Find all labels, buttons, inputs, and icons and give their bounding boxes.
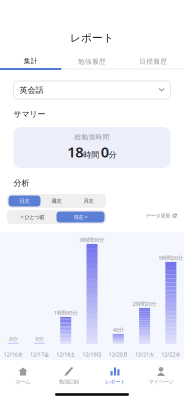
button[interactable]: 集計 <box>0 57 61 70</box>
staticText: 12/19日 <box>82 351 101 358</box>
staticText: 6時間30分 <box>80 236 104 243</box>
staticText: < ひとつ前 <box>20 213 44 221</box>
button[interactable]: < ひとつ前 <box>8 211 56 222</box>
staticText: サマリー <box>13 109 45 119</box>
staticText: 12/16水 <box>4 351 23 358</box>
staticText: 英会話 <box>19 85 43 95</box>
button[interactable]: 日次 <box>8 195 40 206</box>
button[interactable]: 英会話 <box>13 81 170 99</box>
staticText: ホーム <box>15 378 30 385</box>
staticText: 1時間45分 <box>54 309 78 316</box>
staticText: 12/18土 <box>56 351 75 358</box>
staticText: 勉強履歴 <box>78 57 106 66</box>
staticText: 週次 <box>51 198 61 204</box>
staticText: 月次 <box>83 198 93 204</box>
staticText: 0分 <box>35 335 43 342</box>
staticText: 12/21火 <box>135 351 154 358</box>
staticText: 時間 <box>83 150 99 160</box>
button[interactable]: マイページ <box>138 360 184 389</box>
button[interactable]: 勉強履歴 <box>61 57 123 69</box>
staticText: 12/17金 <box>30 351 49 358</box>
button[interactable]: レポート <box>92 360 138 389</box>
staticText: 2時間20分 <box>133 300 157 307</box>
staticText: 12/22水 <box>161 351 180 358</box>
staticText: 集計 <box>24 57 38 65</box>
staticText: 5時間20分 <box>159 254 183 261</box>
staticText: マイページ <box>148 378 173 385</box>
staticText: レポート <box>70 31 114 44</box>
staticText: 18 <box>67 142 83 162</box>
staticText: 日次 <box>19 198 29 204</box>
staticText: 目標履歴 <box>139 57 167 66</box>
staticText: 12/20月 <box>109 351 128 358</box>
staticText: 0 <box>101 142 109 162</box>
staticText: 40分 <box>113 326 124 333</box>
staticText: 総勉強時間 <box>74 133 109 141</box>
staticText: 現在 > <box>73 213 87 221</box>
staticText: 0分 <box>9 335 17 342</box>
button[interactable]: 目標履歴 <box>123 57 184 69</box>
staticText: 分 <box>109 150 117 160</box>
button[interactable]: 月次 <box>72 195 104 206</box>
staticText: 分析 <box>13 178 29 188</box>
button[interactable]: 週次 <box>40 195 72 206</box>
staticText: データ更新 <box>145 212 170 219</box>
staticText: レポート <box>105 378 125 385</box>
button[interactable]: 現在 > <box>56 211 104 222</box>
staticText: 勉強記録 <box>59 378 79 385</box>
button[interactable]: 勉強記録 <box>46 360 92 389</box>
button[interactable]: ホーム <box>0 360 46 389</box>
